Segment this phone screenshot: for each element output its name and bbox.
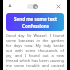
button[interactable]: Send me some text Confessions	[6, 13, 64, 31]
button[interactable]: Close	[55, 3, 61, 9]
button[interactable]: Profile	[7, 3, 13, 9]
button[interactable]: Play recording	[27, 4, 38, 9]
staticText: Good day Sir Weasel. I found some banana…	[6, 33, 64, 70]
staticText: Send me some text Confessions	[14, 16, 57, 29]
